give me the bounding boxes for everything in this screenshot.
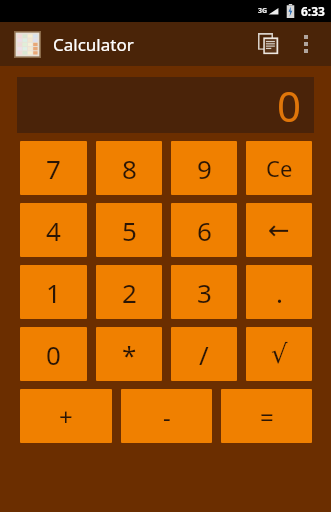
staticText: 3: [197, 275, 212, 310]
staticText: Ce: [266, 153, 293, 183]
button[interactable]: -: [121, 389, 212, 443]
button[interactable]: More options: [291, 29, 321, 59]
staticText: 8: [122, 151, 137, 186]
button[interactable]: /: [171, 327, 237, 381]
staticText: 1: [46, 275, 61, 310]
button[interactable]: 7: [20, 141, 87, 195]
staticText: 7: [46, 151, 61, 186]
button[interactable]: 2: [96, 265, 162, 319]
staticText: 0: [46, 337, 61, 372]
button[interactable]: ←: [246, 203, 312, 257]
staticText: /: [199, 337, 209, 372]
button[interactable]: 3: [171, 265, 237, 319]
button[interactable]: 5: [96, 203, 162, 257]
button[interactable]: =: [221, 389, 312, 443]
staticText: +: [59, 400, 73, 433]
staticText: √: [271, 339, 288, 369]
staticText: 2: [122, 275, 137, 310]
button[interactable]: √: [246, 327, 312, 381]
staticText: =: [260, 400, 274, 433]
button[interactable]: Copy: [249, 24, 289, 64]
staticText: *: [122, 337, 137, 372]
staticText: 4: [46, 213, 61, 248]
staticText: 6: [197, 213, 212, 248]
button[interactable]: Ce: [246, 141, 312, 195]
button[interactable]: 0: [20, 327, 87, 381]
button[interactable]: 8: [96, 141, 162, 195]
button[interactable]: 4: [20, 203, 87, 257]
button[interactable]: +: [20, 389, 112, 443]
staticText: Calculator: [53, 33, 134, 56]
staticText: 0: [276, 77, 301, 133]
button[interactable]: 9: [171, 141, 237, 195]
staticText: 9: [197, 151, 212, 186]
staticText: 3G: [258, 6, 268, 16]
staticText: -: [163, 400, 171, 433]
staticText: 6:33: [301, 3, 325, 19]
staticText: 5: [122, 213, 137, 248]
button[interactable]: 6: [171, 203, 237, 257]
button[interactable]: *: [96, 327, 162, 381]
button[interactable]: .: [246, 265, 312, 319]
button[interactable]: 1: [20, 265, 87, 319]
staticText: ←: [268, 215, 290, 245]
staticText: .: [276, 275, 283, 310]
